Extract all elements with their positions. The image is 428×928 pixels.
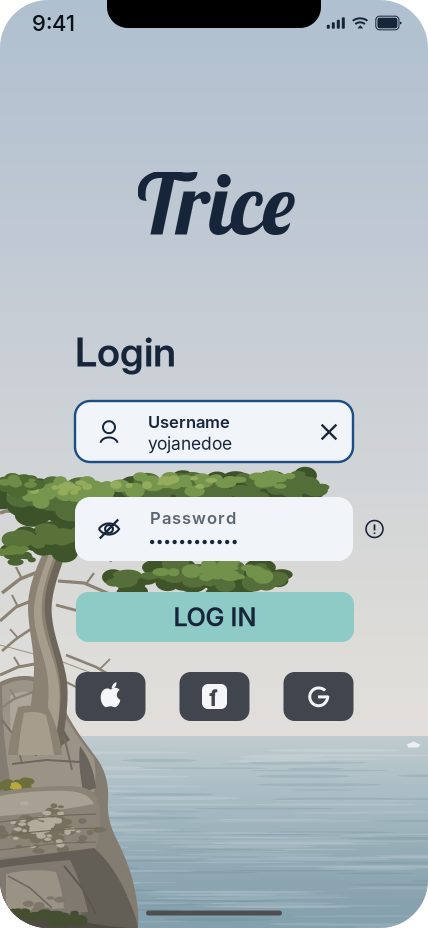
staticText: P a s s w o r d: [150, 508, 236, 528]
button[interactable]: Username: [75, 401, 353, 462]
button[interactable]: Sign in with Apple: [75, 672, 145, 721]
staticText: LOG IN: [173, 602, 256, 632]
button[interactable]: LOG IN: [76, 592, 354, 642]
button[interactable]: Sign in with Facebook: [179, 672, 249, 721]
staticText: yojanedoe: [148, 433, 232, 454]
staticText: Username: [148, 412, 230, 432]
button[interactable]: Sign in with Google: [283, 672, 353, 721]
staticText: Login: [75, 328, 176, 376]
button[interactable]: P a s s w o r d: [75, 497, 353, 561]
staticText: Trice: [132, 150, 295, 255]
staticText: 9:41: [32, 10, 75, 36]
